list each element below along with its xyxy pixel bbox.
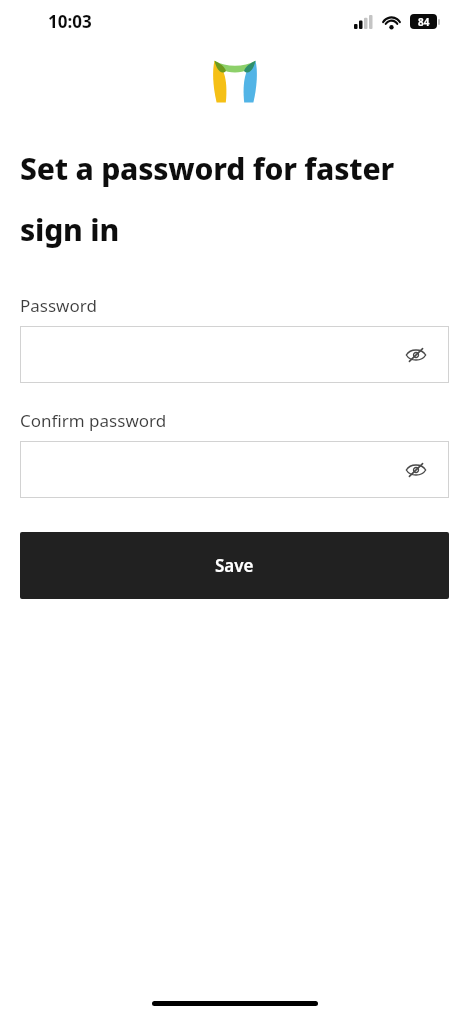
staticText: Confirm password (20, 409, 167, 432)
staticText: 10:03 (48, 10, 92, 33)
button[interactable]: Show confirm password (401, 455, 431, 485)
staticText: Password (20, 294, 97, 317)
button[interactable]: Save (20, 532, 449, 599)
staticText: 84 (418, 15, 430, 29)
staticText: Set a password for faster sign in (20, 148, 453, 250)
button[interactable]: Show password (401, 340, 431, 370)
staticText: Save (215, 554, 254, 577)
